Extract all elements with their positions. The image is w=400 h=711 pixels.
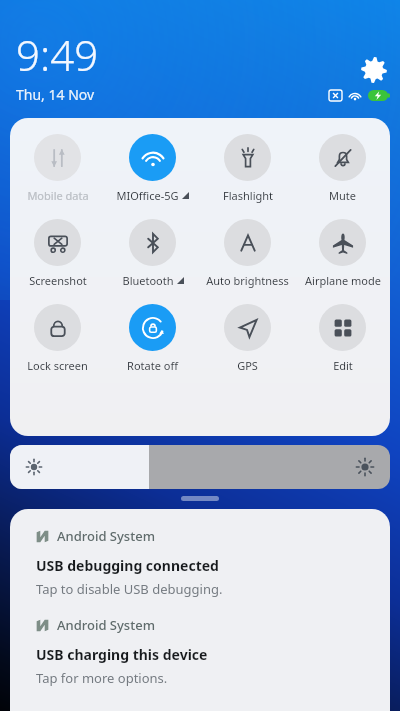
button[interactable]: Airplane mode bbox=[295, 219, 390, 288]
button[interactable]: Flashlight bbox=[200, 134, 295, 203]
staticText: Tap to disable USB debugging. bbox=[36, 580, 223, 598]
staticText: Mobile data bbox=[27, 188, 89, 203]
button[interactable]: Rotate off bbox=[105, 304, 200, 373]
staticText: Mute bbox=[329, 188, 356, 203]
button[interactable]: Auto brightness bbox=[200, 219, 295, 288]
staticText: Screenshot bbox=[29, 273, 87, 288]
staticText: 9:49 bbox=[16, 26, 99, 83]
button[interactable]: Android System bbox=[10, 509, 390, 598]
button[interactable]: Edit bbox=[295, 304, 390, 373]
staticText: MIOffice-5G bbox=[116, 188, 179, 203]
button[interactable]: Brightness bbox=[10, 445, 390, 489]
button[interactable]: MIOffice-5G bbox=[105, 134, 200, 203]
button[interactable]: Screenshot bbox=[10, 219, 105, 288]
button[interactable]: Settings bbox=[360, 56, 388, 84]
staticText: Bluetooth bbox=[122, 273, 174, 288]
staticText: GPS bbox=[237, 358, 258, 373]
staticText: Lock screen bbox=[27, 358, 88, 373]
staticText: Auto brightness bbox=[206, 273, 289, 288]
button[interactable]: Bluetooth bbox=[105, 219, 200, 288]
staticText: Flashlight bbox=[223, 188, 273, 203]
staticText: Thu, 14 Nov bbox=[16, 85, 95, 104]
button[interactable]: Mute bbox=[295, 134, 390, 203]
staticText: Tap for more options. bbox=[36, 669, 168, 687]
button[interactable]: Android System bbox=[10, 598, 390, 687]
staticText: USB debugging connected bbox=[36, 556, 219, 575]
staticText: Android System bbox=[57, 527, 155, 545]
staticText: Rotate off bbox=[127, 358, 178, 373]
staticText: USB charging this device bbox=[36, 645, 208, 664]
staticText: Android System bbox=[57, 616, 155, 634]
button[interactable]: Lock screen bbox=[10, 304, 105, 373]
button[interactable]: Mobile data bbox=[10, 134, 105, 203]
button[interactable]: GPS bbox=[200, 304, 295, 373]
staticText: Edit bbox=[333, 358, 353, 373]
staticText: Airplane mode bbox=[305, 273, 381, 288]
